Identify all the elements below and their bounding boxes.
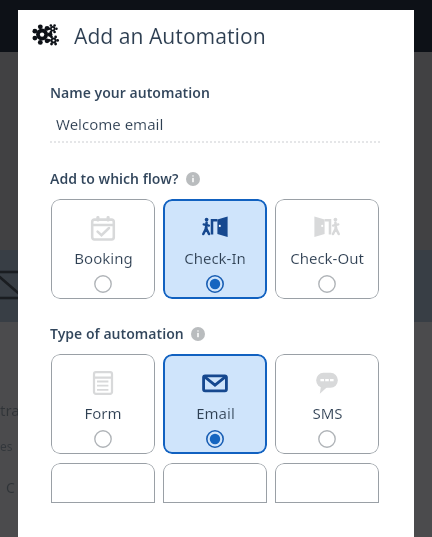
- staticText: tra: [0, 400, 20, 420]
- other: More info: [186, 172, 200, 186]
- staticText: Name your automation: [50, 83, 210, 102]
- staticText: Form: [84, 403, 122, 423]
- button[interactable]: [163, 463, 267, 503]
- button[interactable]: [51, 463, 155, 503]
- staticText: SMS: [312, 403, 343, 423]
- button[interactable]: Check-Out: [275, 199, 379, 299]
- staticText: Booking: [74, 248, 133, 268]
- staticText: es: [0, 438, 13, 454]
- other: More info: [191, 327, 205, 341]
- button[interactable]: Booking: [51, 199, 155, 299]
- staticText: Add to which flow?: [50, 169, 179, 188]
- button[interactable]: [275, 463, 379, 503]
- button[interactable]: Email: [163, 354, 267, 454]
- button[interactable]: SMS: [275, 354, 379, 454]
- button[interactable]: Form: [51, 354, 155, 454]
- staticText: Check-Out: [290, 248, 364, 268]
- staticText: Add an Automation: [74, 22, 266, 51]
- staticText: Type of automation: [50, 324, 184, 343]
- staticText: Check-In: [184, 248, 246, 268]
- other: Automation: [32, 22, 60, 50]
- staticText: C: [6, 478, 15, 497]
- button[interactable]: Check-In: [163, 199, 267, 299]
- staticText: Welcome email: [56, 114, 164, 134]
- staticText: Email: [196, 403, 235, 423]
